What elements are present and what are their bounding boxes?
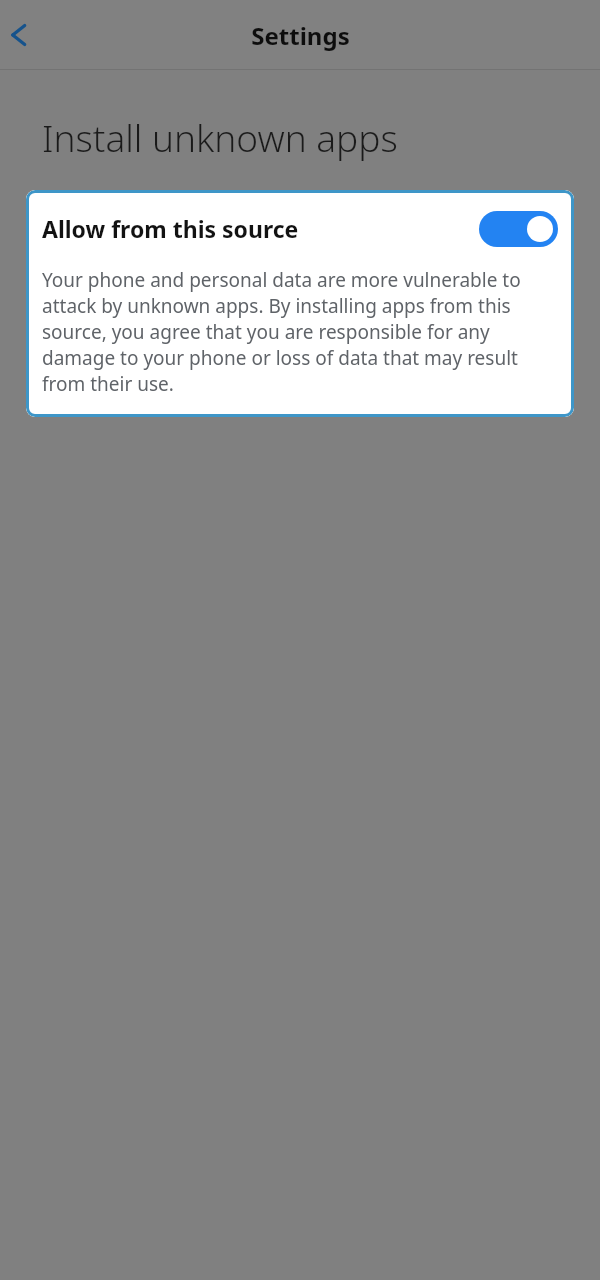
button[interactable]: Back — [0, 11, 43, 59]
staticText: Install unknown apps — [42, 112, 398, 162]
staticText: Settings — [251, 19, 350, 52]
button[interactable]: Allow from this source toggle — [479, 211, 558, 247]
staticText: Allow from this source — [42, 213, 479, 244]
staticText: Your phone and personal data are more vu… — [42, 267, 560, 397]
button[interactable]: Allow from this source — [26, 190, 574, 267]
